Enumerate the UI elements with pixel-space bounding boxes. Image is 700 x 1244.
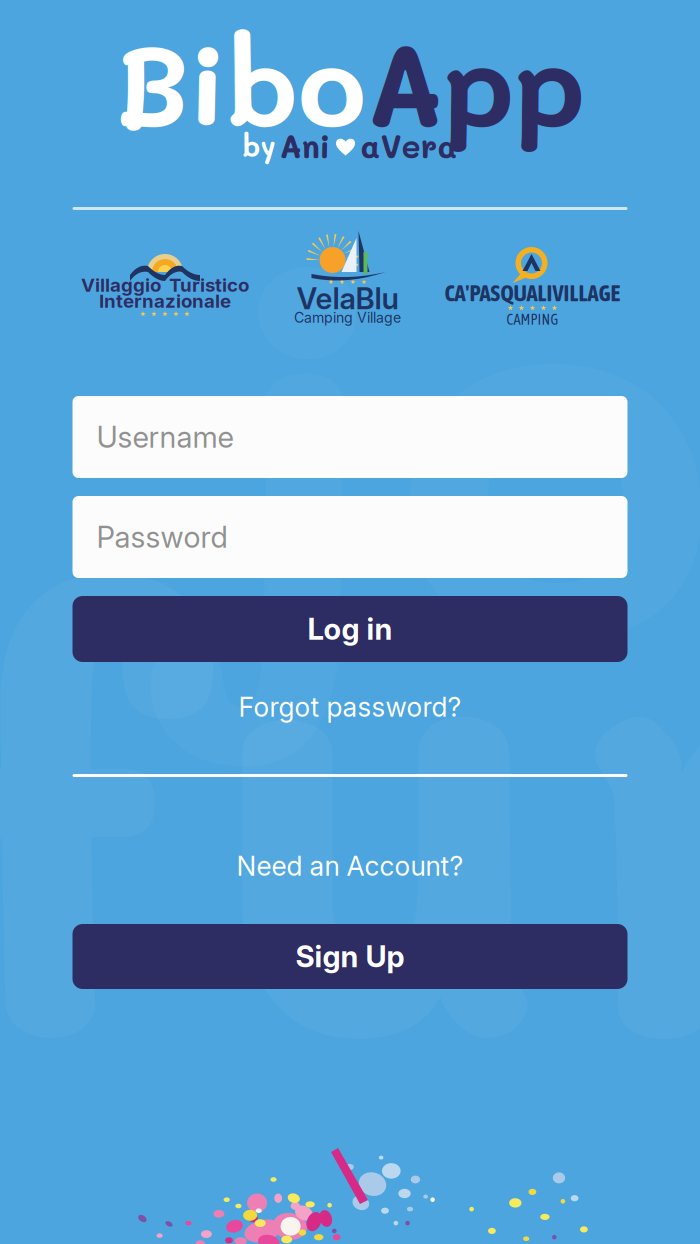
staticText: VelaBlu (296, 281, 398, 316)
button[interactable]: Sign Up (72, 924, 627, 989)
staticText: Password (96, 519, 227, 555)
staticText: Villaggio Turistico (81, 274, 249, 296)
staticText: Username (96, 419, 233, 455)
staticText: Bibo (114, 9, 366, 154)
staticText: aVera (360, 125, 457, 166)
button[interactable]: Password (72, 496, 627, 578)
staticText: Forgot password? (238, 691, 461, 723)
staticText: Log in (307, 611, 392, 647)
staticText: joy (193, 80, 700, 774)
staticText: CAMPING (506, 311, 558, 328)
staticText: Camping Village (294, 309, 401, 326)
staticText: Sign Up (295, 939, 404, 974)
staticText: CA'PASQUALIVILLAGE (444, 280, 620, 306)
button[interactable]: Username (72, 396, 627, 478)
button[interactable]: Log in (72, 596, 627, 662)
staticText: by (242, 127, 275, 164)
staticText: Need an Account? (236, 850, 463, 882)
staticText: Ani (279, 125, 330, 166)
staticText: App (366, 9, 586, 154)
staticText: fun (0, 380, 700, 1194)
button[interactable]: Forgot password? (72, 684, 627, 730)
staticText: Internazionale (99, 290, 231, 312)
